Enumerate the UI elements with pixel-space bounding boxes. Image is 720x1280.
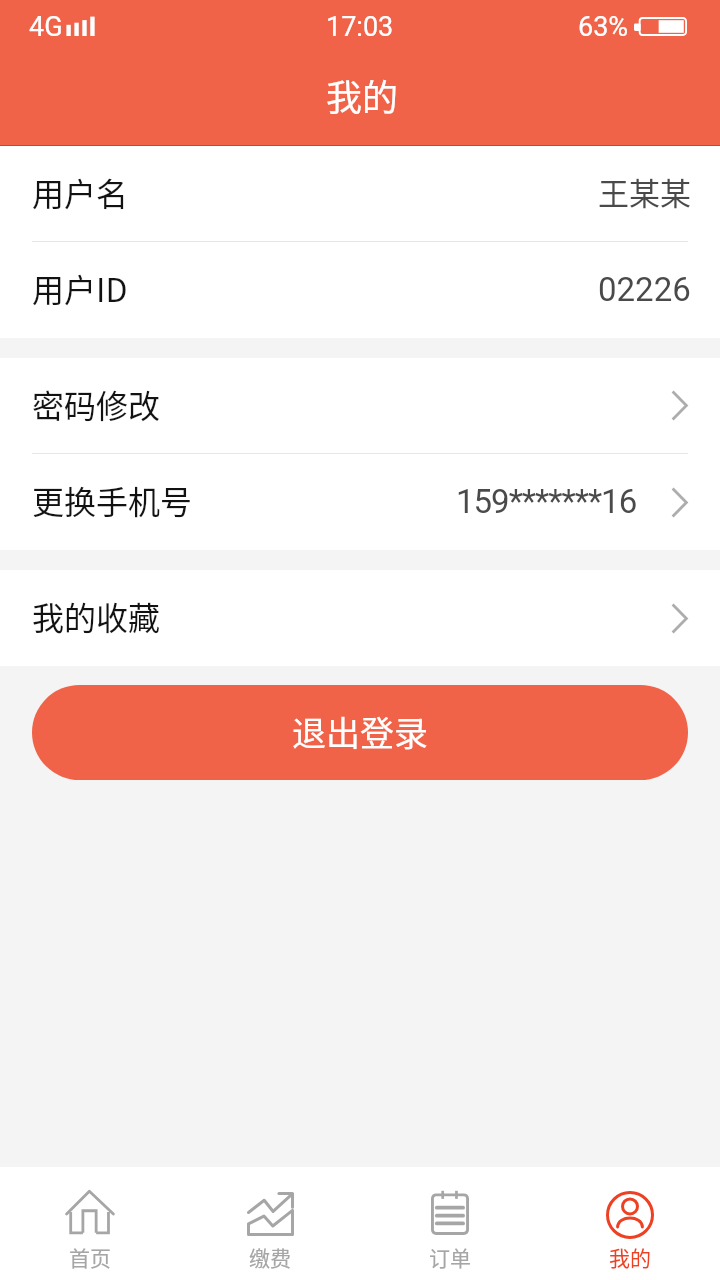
staticText: 02226	[598, 270, 691, 309]
button[interactable]: 订单	[360, 1167, 540, 1280]
staticText: 63%	[578, 11, 629, 43]
button[interactable]: 我的收藏	[0, 570, 720, 666]
button[interactable]: 密码修改	[0, 358, 720, 453]
staticText: 我的	[609, 1242, 651, 1272]
staticText: 我的	[326, 69, 399, 121]
button[interactable]: 缴费	[180, 1167, 360, 1280]
staticText: 更换手机号	[32, 477, 193, 523]
staticText: 订单	[429, 1242, 471, 1272]
staticText: 密码修改	[32, 381, 161, 427]
button[interactable]: 退出登录	[32, 685, 688, 780]
staticText: 王某某	[598, 169, 691, 214]
button[interactable]: 首页	[0, 1167, 180, 1280]
staticText: 退出登录	[292, 707, 428, 756]
staticText: 我的收藏	[32, 593, 161, 639]
button[interactable]: 用户ID	[0, 242, 720, 338]
button[interactable]: 我的	[540, 1167, 720, 1280]
staticText: 159*******16	[456, 482, 637, 521]
button[interactable]: 用户名	[0, 146, 720, 241]
staticText: 17:03	[326, 11, 394, 43]
staticText: 缴费	[249, 1242, 291, 1272]
staticText: 用户名	[32, 169, 129, 215]
staticText: 用户ID	[32, 265, 128, 311]
staticText: 4G	[29, 11, 63, 43]
staticText: 首页	[69, 1242, 111, 1272]
button[interactable]: 更换手机号	[0, 454, 720, 550]
